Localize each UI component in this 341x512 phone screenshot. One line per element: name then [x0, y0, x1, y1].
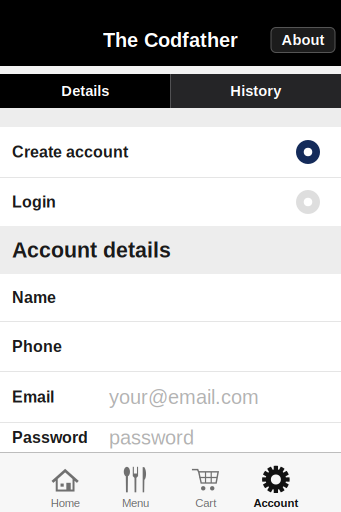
button[interactable]: Login: [0, 178, 341, 226]
staticText: Create account: [12, 143, 128, 161]
button[interactable]: Home: [30, 453, 100, 512]
staticText: The Codfather: [103, 29, 238, 51]
staticText: Home: [51, 497, 80, 509]
staticText: Phone: [12, 338, 62, 355]
button[interactable]: Name: [0, 274, 341, 321]
staticText: Account: [253, 497, 298, 509]
button[interactable]: Details: [0, 74, 170, 108]
staticText: your@email.com: [109, 386, 259, 408]
button[interactable]: About: [271, 27, 335, 52]
staticText: About: [281, 32, 324, 48]
button[interactable]: Create account: [0, 127, 341, 177]
button[interactable]: History: [170, 74, 341, 108]
button[interactable]: Password: [0, 423, 341, 452]
staticText: Account details: [12, 238, 171, 262]
button[interactable]: Account: [241, 453, 311, 512]
button[interactable]: Phone: [0, 322, 341, 371]
staticText: Password: [12, 429, 88, 446]
staticText: Details: [61, 83, 109, 99]
staticText: Email: [12, 388, 54, 406]
staticText: Login: [12, 193, 56, 211]
button[interactable]: Menu: [100, 453, 170, 512]
staticText: Cart: [195, 497, 216, 509]
staticText: Name: [12, 289, 56, 306]
button[interactable]: Cart: [170, 453, 241, 512]
staticText: password: [109, 426, 194, 449]
button[interactable]: Email: [0, 372, 341, 422]
staticText: Menu: [122, 497, 149, 509]
staticText: History: [230, 83, 281, 99]
